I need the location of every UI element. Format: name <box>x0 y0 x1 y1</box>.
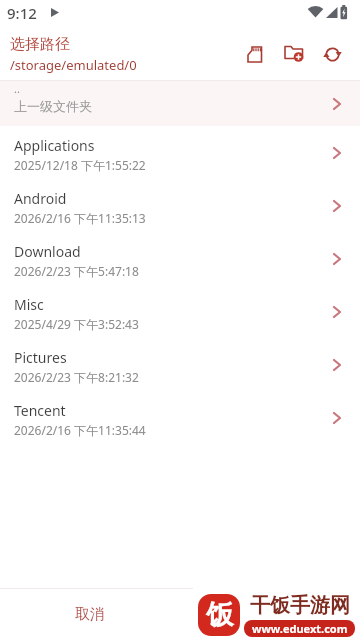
staticText: Download <box>14 242 81 261</box>
staticText: 2026/2/23 下午5:47:18 <box>14 263 139 279</box>
button[interactable]: Misc <box>0 285 360 338</box>
button[interactable] <box>313 28 352 80</box>
staticText: Misc <box>14 295 44 314</box>
button[interactable]: Applications <box>0 126 360 179</box>
staticText: 选择路径 <box>10 35 70 54</box>
staticText: Pictures <box>14 348 67 367</box>
staticText: Applications <box>14 136 95 155</box>
staticText: 2025/12/18 下午1:55:22 <box>14 157 146 173</box>
button[interactable] <box>274 28 313 80</box>
button[interactable] <box>235 28 274 80</box>
button[interactable]: .. <box>0 81 360 126</box>
staticText: 2026/2/16 下午11:35:13 <box>14 210 146 226</box>
button[interactable]: Pictures <box>0 338 360 391</box>
button[interactable]: 取消 <box>0 589 180 640</box>
staticText: 2026/2/16 下午11:35:44 <box>14 422 146 438</box>
staticText: Android <box>14 189 67 208</box>
button[interactable]: Tencent <box>0 391 360 444</box>
staticText: Tencent <box>14 401 66 420</box>
staticText: 确定 <box>255 605 285 624</box>
staticText: 2026/2/23 下午8:21:32 <box>14 369 139 385</box>
button[interactable]: Download <box>0 232 360 285</box>
button[interactable]: Android <box>0 179 360 232</box>
staticText: 干饭手游网 <box>250 593 350 618</box>
staticText: 饭 <box>206 598 233 632</box>
staticText: 9:12 <box>7 3 37 23</box>
staticText: .. <box>14 81 20 96</box>
staticText: /storage/emulated/0 <box>10 56 137 74</box>
staticText: 上一级文件夹 <box>14 98 92 114</box>
staticText: www.eduext.com <box>252 621 348 636</box>
button[interactable]: 确定 <box>180 589 360 640</box>
staticText: 取消 <box>75 605 105 624</box>
staticText: 2025/4/29 下午3:52:43 <box>14 316 139 332</box>
